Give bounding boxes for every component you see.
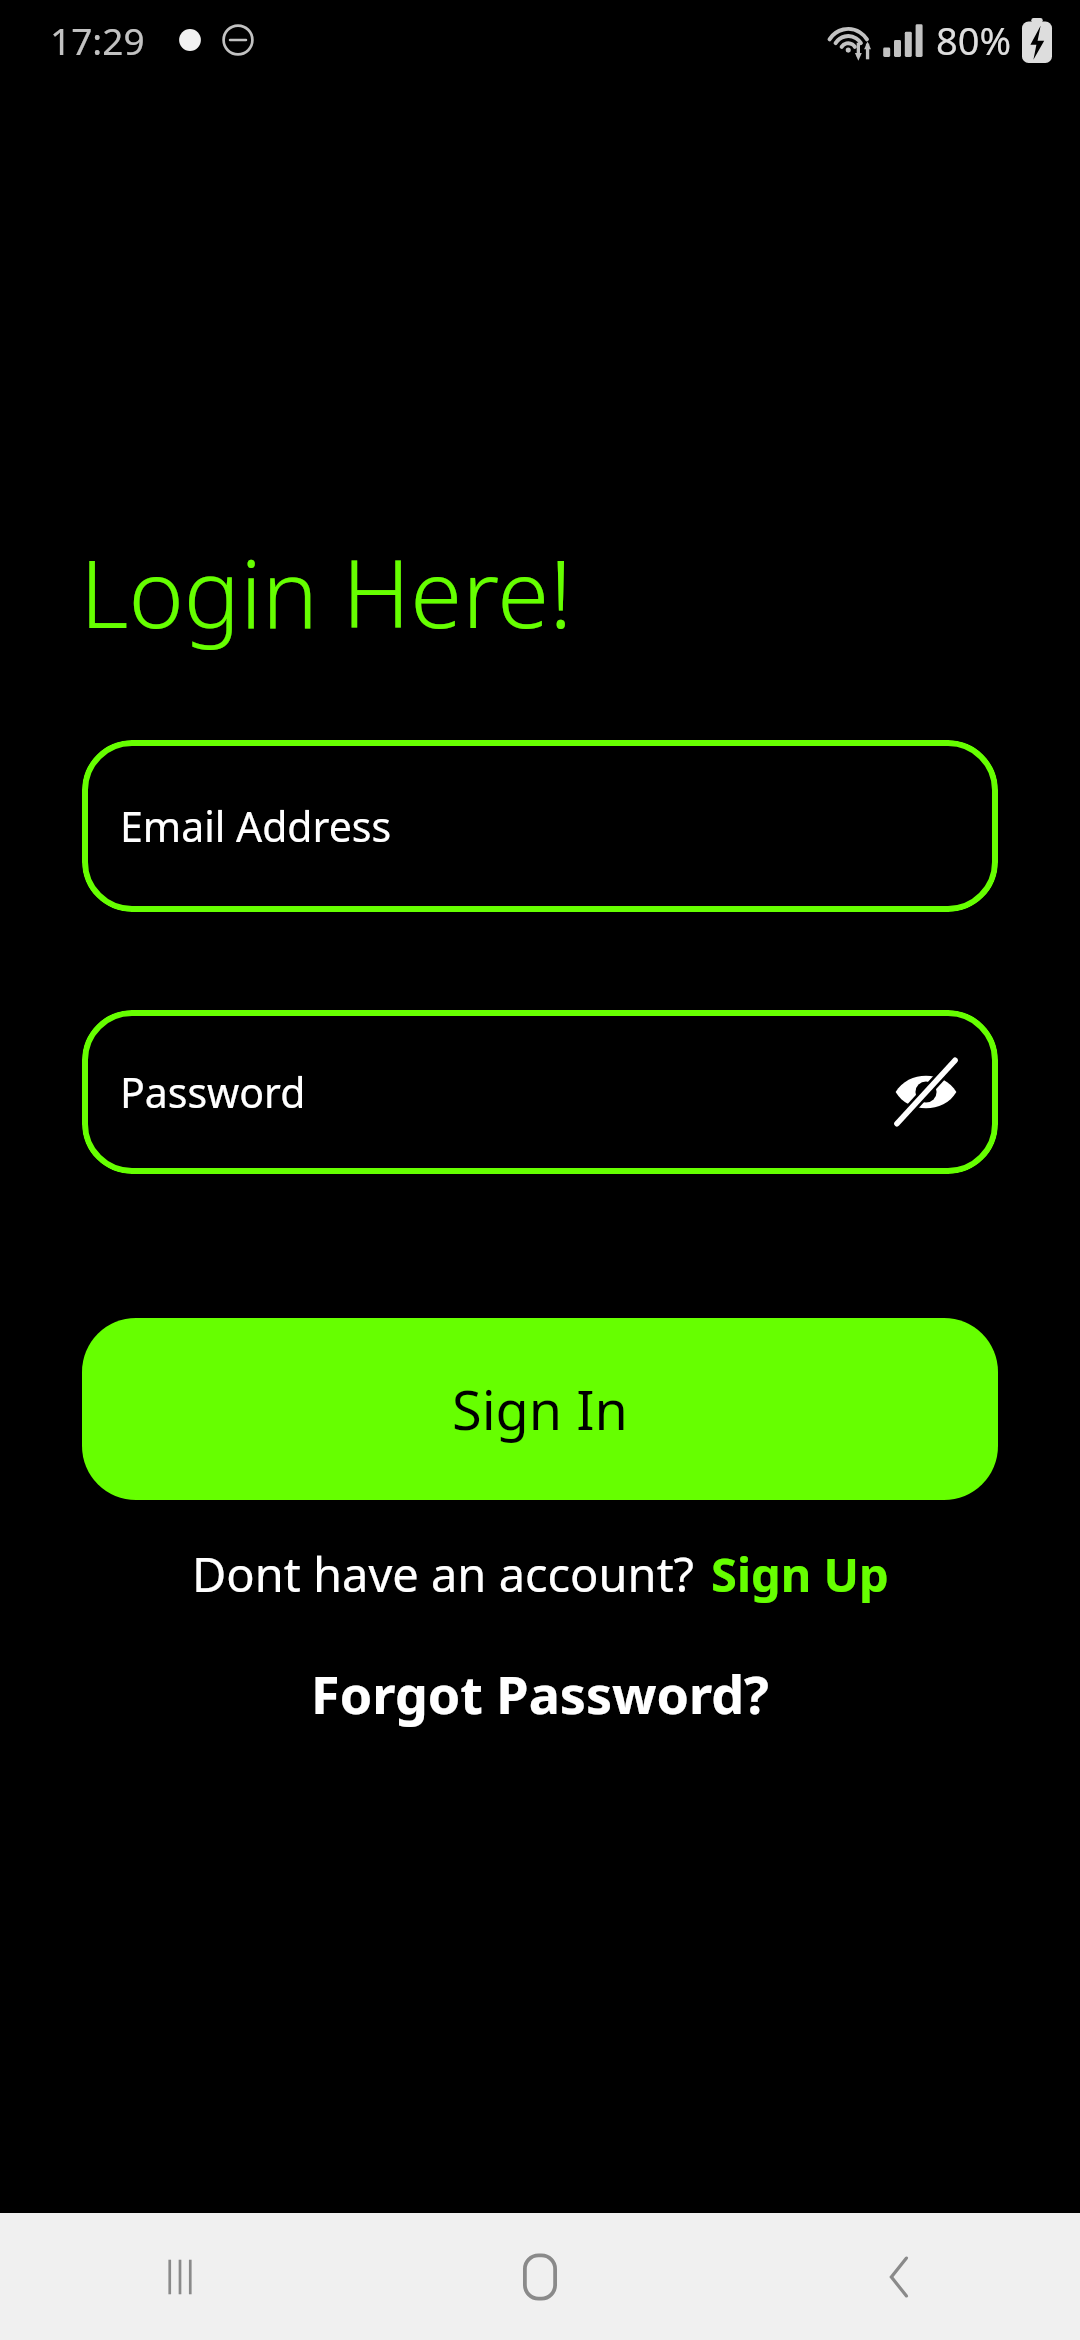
staticText: Password bbox=[120, 1064, 306, 1120]
button[interactable]: Sign In bbox=[82, 1318, 998, 1500]
button[interactable]: Forgot Password? bbox=[311, 1658, 769, 1729]
button[interactable]: Show password bbox=[882, 1048, 970, 1136]
button[interactable]: Recent apps bbox=[0, 2213, 360, 2340]
staticText: 17:29 bbox=[50, 15, 145, 65]
staticText: Forgot Password? bbox=[311, 1658, 769, 1729]
button[interactable]: Email Address bbox=[82, 740, 998, 912]
button[interactable]: Home bbox=[360, 2213, 720, 2340]
button[interactable]: Password bbox=[82, 1010, 998, 1174]
staticText: Sign Up bbox=[711, 1542, 889, 1606]
button[interactable]: Sign Up bbox=[711, 1542, 889, 1606]
staticText: 80% bbox=[936, 14, 1012, 66]
staticText: Email Address bbox=[120, 798, 392, 854]
staticText: Login Here! bbox=[80, 528, 573, 656]
button[interactable]: Back bbox=[720, 2213, 1080, 2340]
staticText: Dont have an account? bbox=[192, 1542, 695, 1606]
staticText: Sign In bbox=[452, 1372, 628, 1446]
